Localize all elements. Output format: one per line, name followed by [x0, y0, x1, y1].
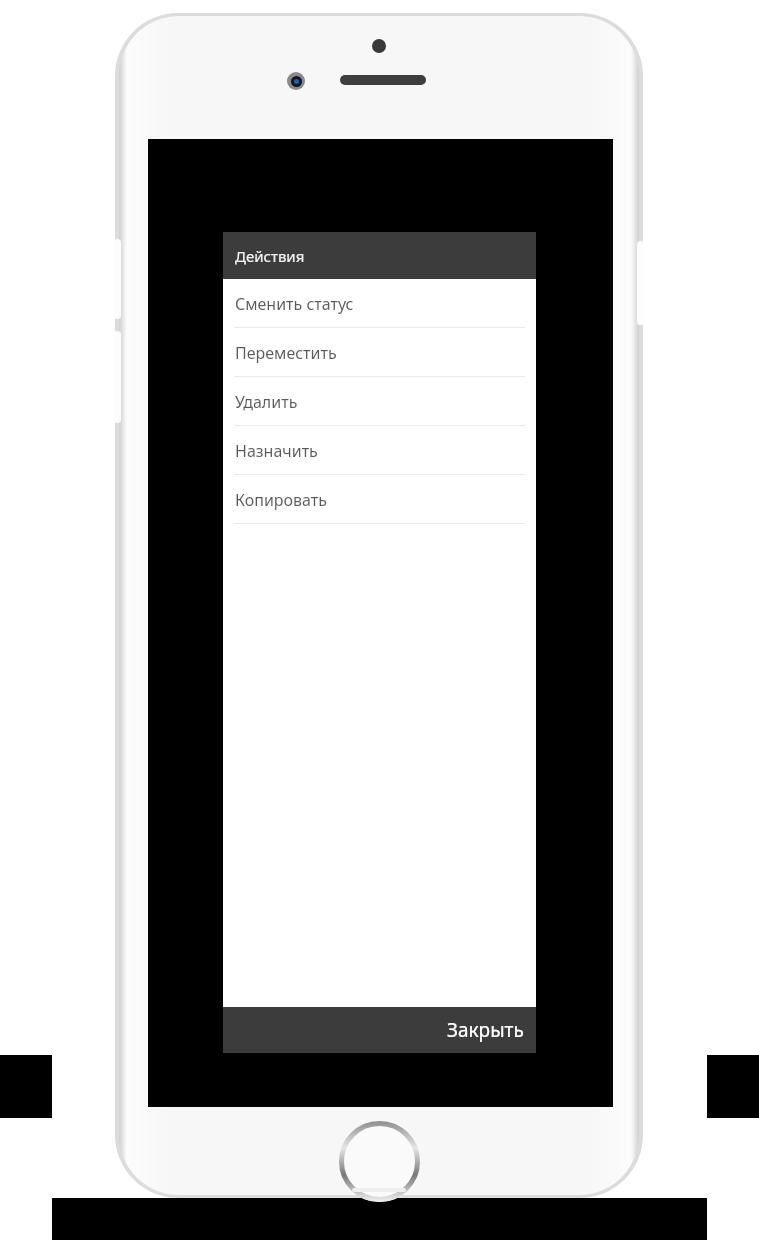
button[interactable]: Переместить: [223, 328, 536, 377]
button[interactable]: Копировать: [223, 475, 536, 524]
button[interactable]: Сменить статус: [223, 279, 536, 328]
staticText: Переместить: [235, 342, 337, 364]
staticText: Назначить: [235, 440, 318, 462]
button[interactable]: Назначить: [223, 426, 536, 475]
button[interactable]: Закрыть: [223, 1007, 536, 1053]
staticText: Копировать: [235, 489, 327, 511]
staticText: Сменить статус: [235, 293, 354, 315]
staticText: Действия: [235, 246, 305, 266]
staticText: Закрыть: [447, 1017, 524, 1043]
staticText: Удалить: [235, 391, 298, 413]
button[interactable]: Удалить: [223, 377, 536, 426]
